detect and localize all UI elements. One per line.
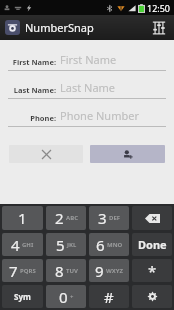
staticText: 7 (9, 261, 18, 281)
button[interactable]: First Name: (8, 52, 166, 71)
staticText: Done (138, 237, 167, 252)
button[interactable]: Add contact (90, 145, 165, 163)
staticText: ABC (66, 214, 78, 222)
button[interactable]: 4 (2, 233, 43, 256)
staticText: 9 (95, 261, 104, 281)
button[interactable]: * (132, 259, 172, 282)
button[interactable]: Keyboard settings (132, 285, 172, 308)
staticText: TUV (66, 267, 78, 275)
staticText: 8 (55, 261, 64, 281)
staticText: Phone: (30, 113, 56, 123)
button[interactable]: Sym (2, 285, 43, 308)
button[interactable]: Phone: (8, 108, 166, 127)
staticText: 5 (56, 235, 65, 255)
staticText: 4 (11, 235, 20, 255)
button[interactable]: 3 (89, 206, 129, 230)
button[interactable]: Done (132, 233, 172, 256)
staticText: JKL (67, 241, 77, 249)
button[interactable]: 5 (46, 233, 86, 256)
button[interactable]: 1 (2, 206, 43, 230)
button[interactable]: 8 (46, 259, 86, 282)
button[interactable]: 6 (89, 233, 129, 256)
staticText: 0 (59, 287, 68, 307)
staticText: Sym (14, 291, 31, 302)
button[interactable]: 2 (46, 206, 86, 230)
staticText: + (70, 293, 74, 301)
staticText: 3 (98, 208, 107, 228)
staticText: First Name: (12, 57, 56, 67)
button[interactable]: Settings (148, 17, 170, 39)
staticText: MNO (107, 241, 123, 249)
button[interactable]: Delete (132, 206, 172, 230)
staticText: 1 (18, 208, 27, 228)
staticText: * (148, 261, 157, 281)
button[interactable]: # (89, 285, 129, 308)
button[interactable]: Last Name: (8, 80, 166, 99)
button[interactable]: 7 (2, 259, 43, 282)
staticText: PQRS (20, 267, 36, 275)
button[interactable]: 9 (89, 259, 129, 282)
staticText: Phone Number (60, 108, 139, 123)
staticText: 2 (55, 208, 64, 228)
staticText: First Name (60, 52, 117, 67)
staticText: 6 (96, 235, 105, 255)
staticText: # (104, 287, 114, 307)
button[interactable]: Clear (9, 145, 83, 163)
staticText: NumberSnap (25, 20, 94, 35)
staticText: 12:50 (147, 2, 171, 14)
staticText: Last Name (60, 80, 116, 95)
staticText: GHI (22, 241, 34, 249)
staticText: Last Name: (13, 85, 56, 95)
staticText: WXYZ (106, 267, 124, 275)
staticText: DEF (109, 214, 121, 222)
button[interactable]: 0 (46, 285, 86, 308)
